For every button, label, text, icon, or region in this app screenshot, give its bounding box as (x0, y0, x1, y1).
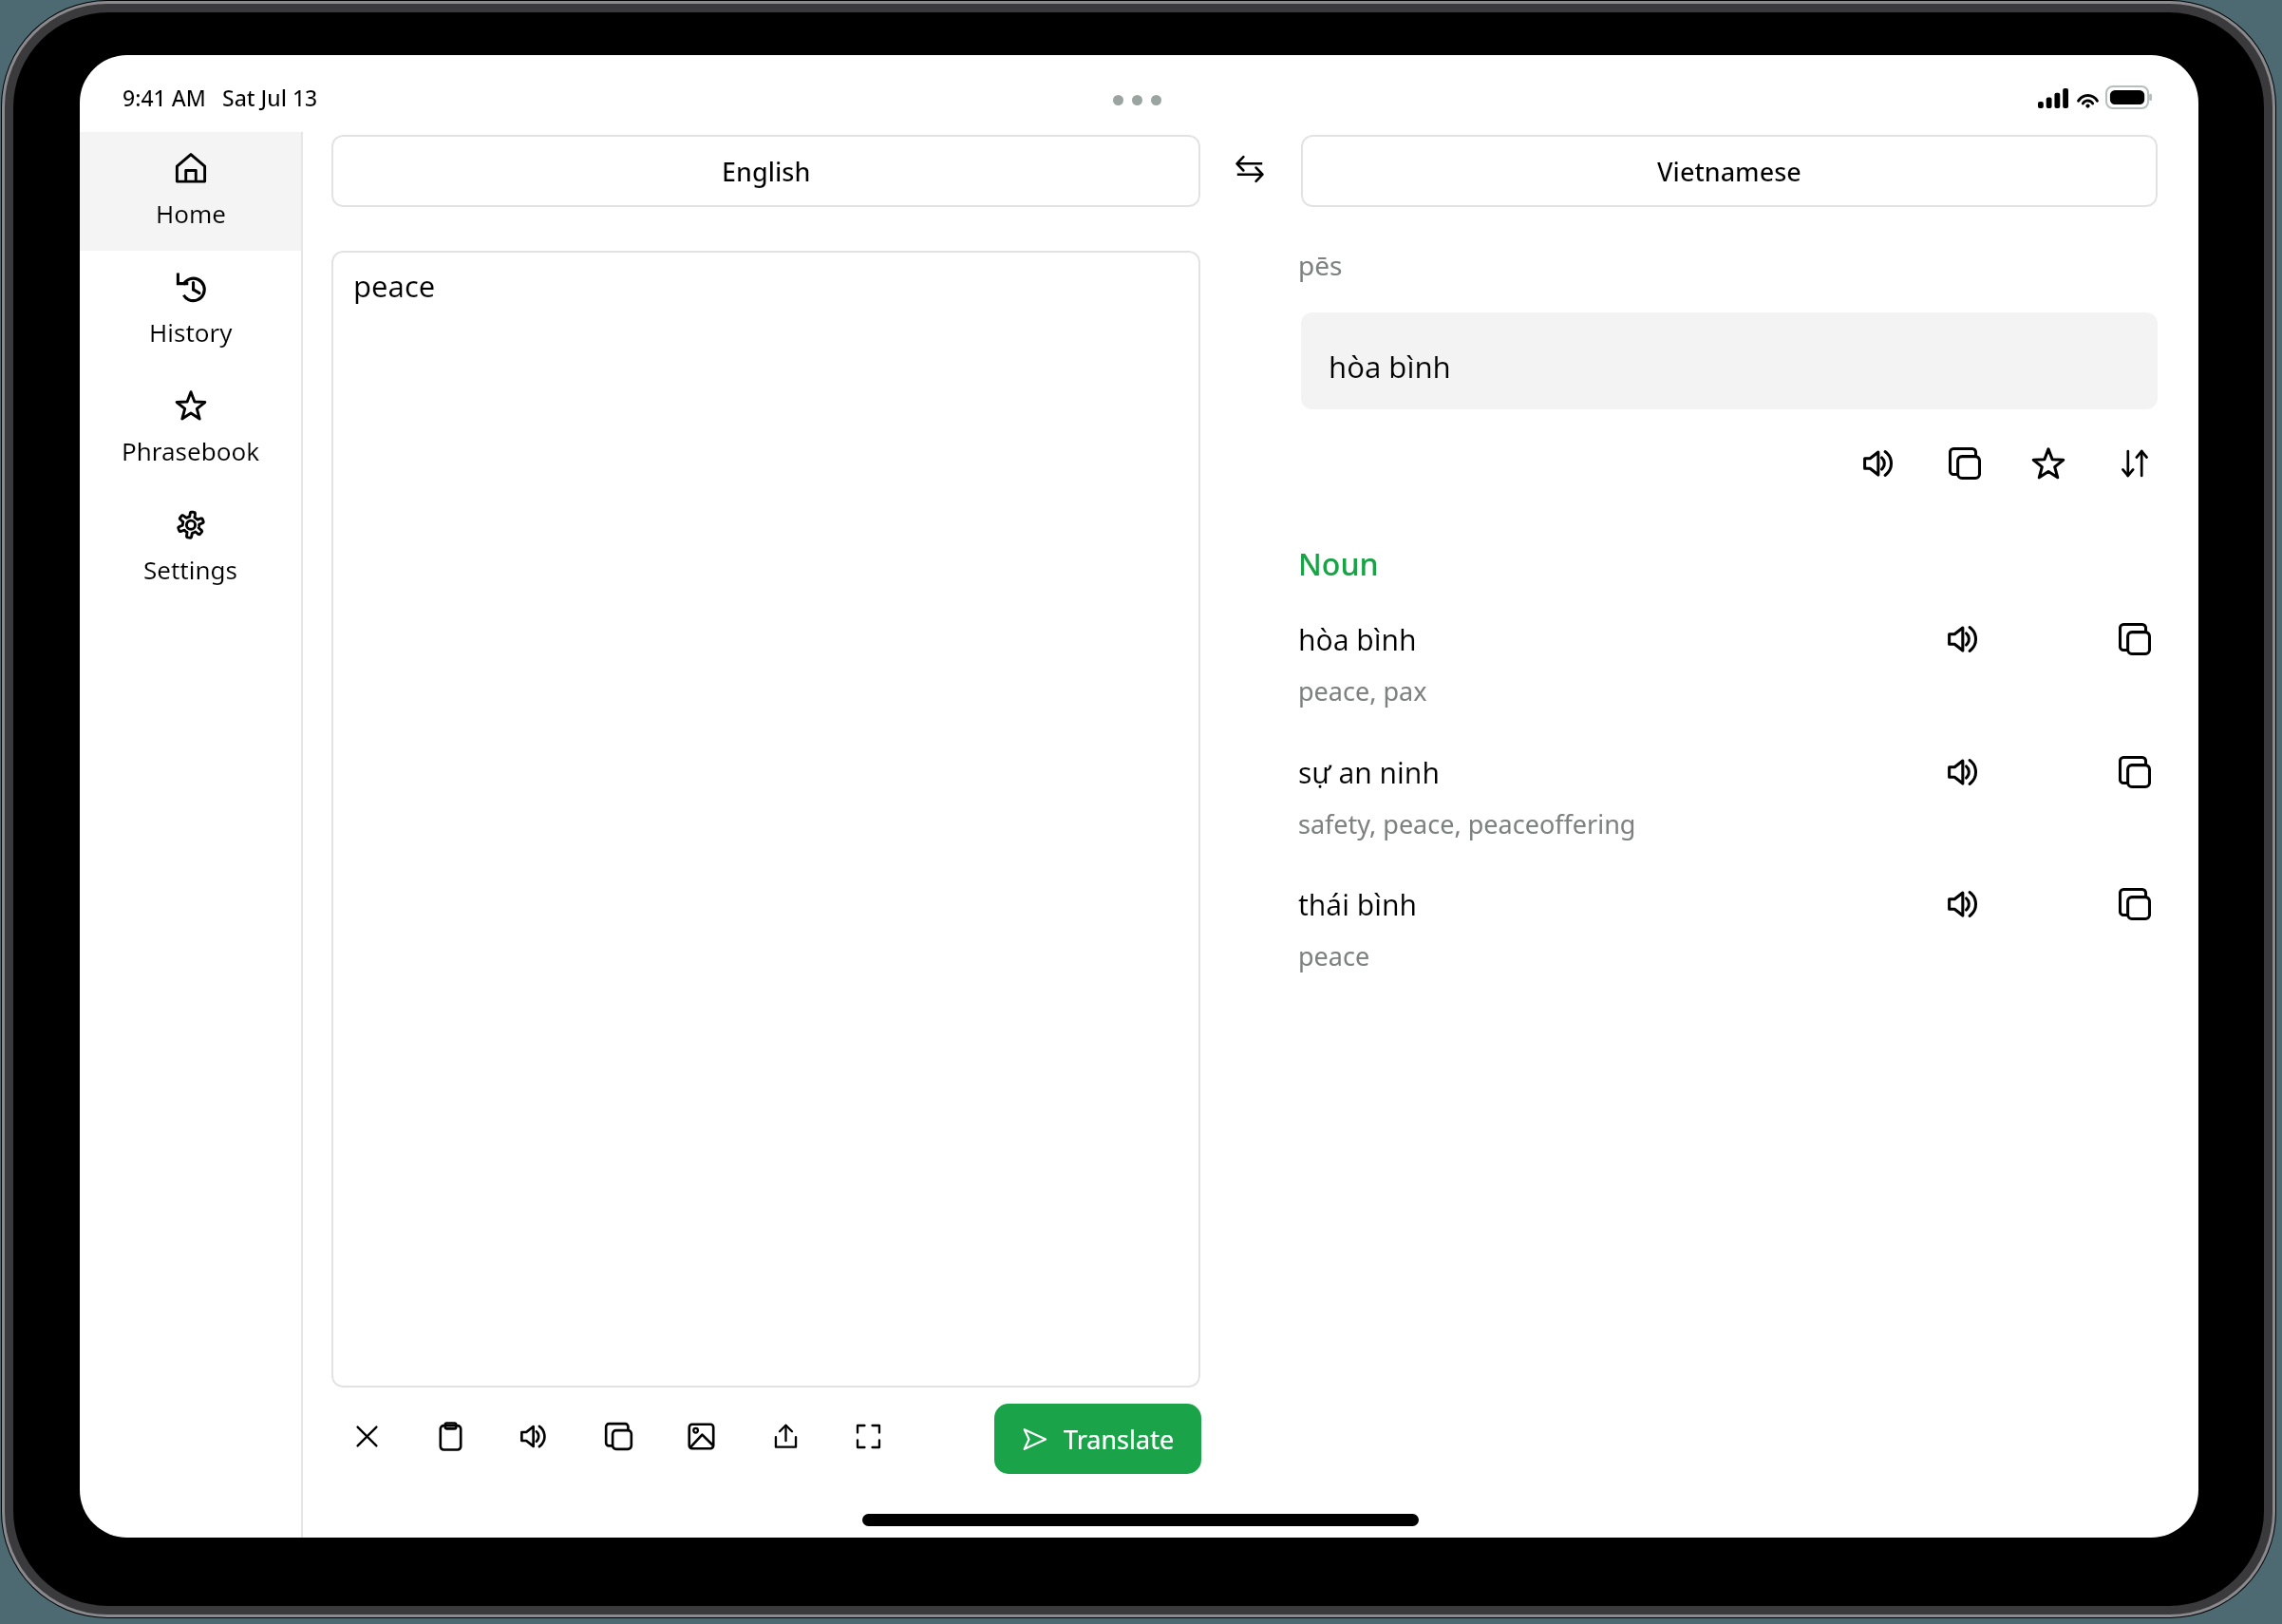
button[interactable]: Image (670, 1406, 731, 1466)
staticText: sự an ninh (1298, 753, 1440, 792)
button[interactable]: Listen (1934, 742, 1995, 803)
button[interactable]: Share (755, 1406, 816, 1466)
button[interactable]: English (331, 135, 1200, 207)
button[interactable]: Clear (336, 1406, 397, 1466)
staticText: peace (353, 266, 436, 306)
staticText: thái bình (1298, 885, 1418, 924)
button[interactable]: History (80, 251, 301, 369)
staticText: History (149, 315, 233, 348)
button[interactable]: Copy (588, 1406, 649, 1466)
button[interactable]: Copy (2104, 742, 2165, 803)
button[interactable]: Listen (504, 1406, 565, 1466)
staticText: Noun (1298, 543, 1379, 585)
staticText: peace, pax (1298, 673, 1427, 708)
button[interactable]: Translate (994, 1404, 1201, 1474)
button[interactable]: Home (80, 132, 301, 251)
button[interactable]: Copy (1934, 433, 1995, 494)
button[interactable]: Sort (2104, 433, 2165, 494)
staticText: Vietnamese (1657, 154, 1801, 189)
staticText: English (722, 154, 811, 189)
button[interactable]: Listen (1934, 609, 1995, 670)
staticText: Sat Jul 13 (222, 83, 318, 112)
button[interactable]: Listen (1934, 874, 1995, 935)
button[interactable]: Settings (80, 488, 301, 607)
button[interactable]: Phrasebook (80, 369, 301, 488)
button[interactable]: Copy (2104, 609, 2165, 670)
button[interactable]: peace (331, 251, 1200, 1388)
staticText: Settings (143, 553, 237, 585)
staticText: pēs (1298, 247, 1343, 283)
staticText: Translate (1064, 1422, 1175, 1457)
staticText: 9:41 AM (123, 83, 206, 112)
staticText: Phrasebook (122, 434, 260, 466)
staticText: hòa bình (1298, 620, 1417, 659)
button[interactable]: Vietnamese (1301, 135, 2158, 207)
button[interactable]: Listen (1850, 433, 1911, 494)
staticText: Home (156, 197, 226, 229)
button[interactable]: Copy (2104, 874, 2165, 935)
staticText: safety, peace, peaceoffering (1298, 806, 1636, 841)
staticText: peace (1298, 938, 1370, 973)
button[interactable]: Swap languages (1219, 139, 1280, 199)
staticText: hòa bình (1329, 347, 1451, 387)
button[interactable]: Fullscreen (838, 1406, 898, 1466)
button[interactable]: Favourite (2018, 433, 2079, 494)
button[interactable]: Paste (420, 1406, 481, 1466)
